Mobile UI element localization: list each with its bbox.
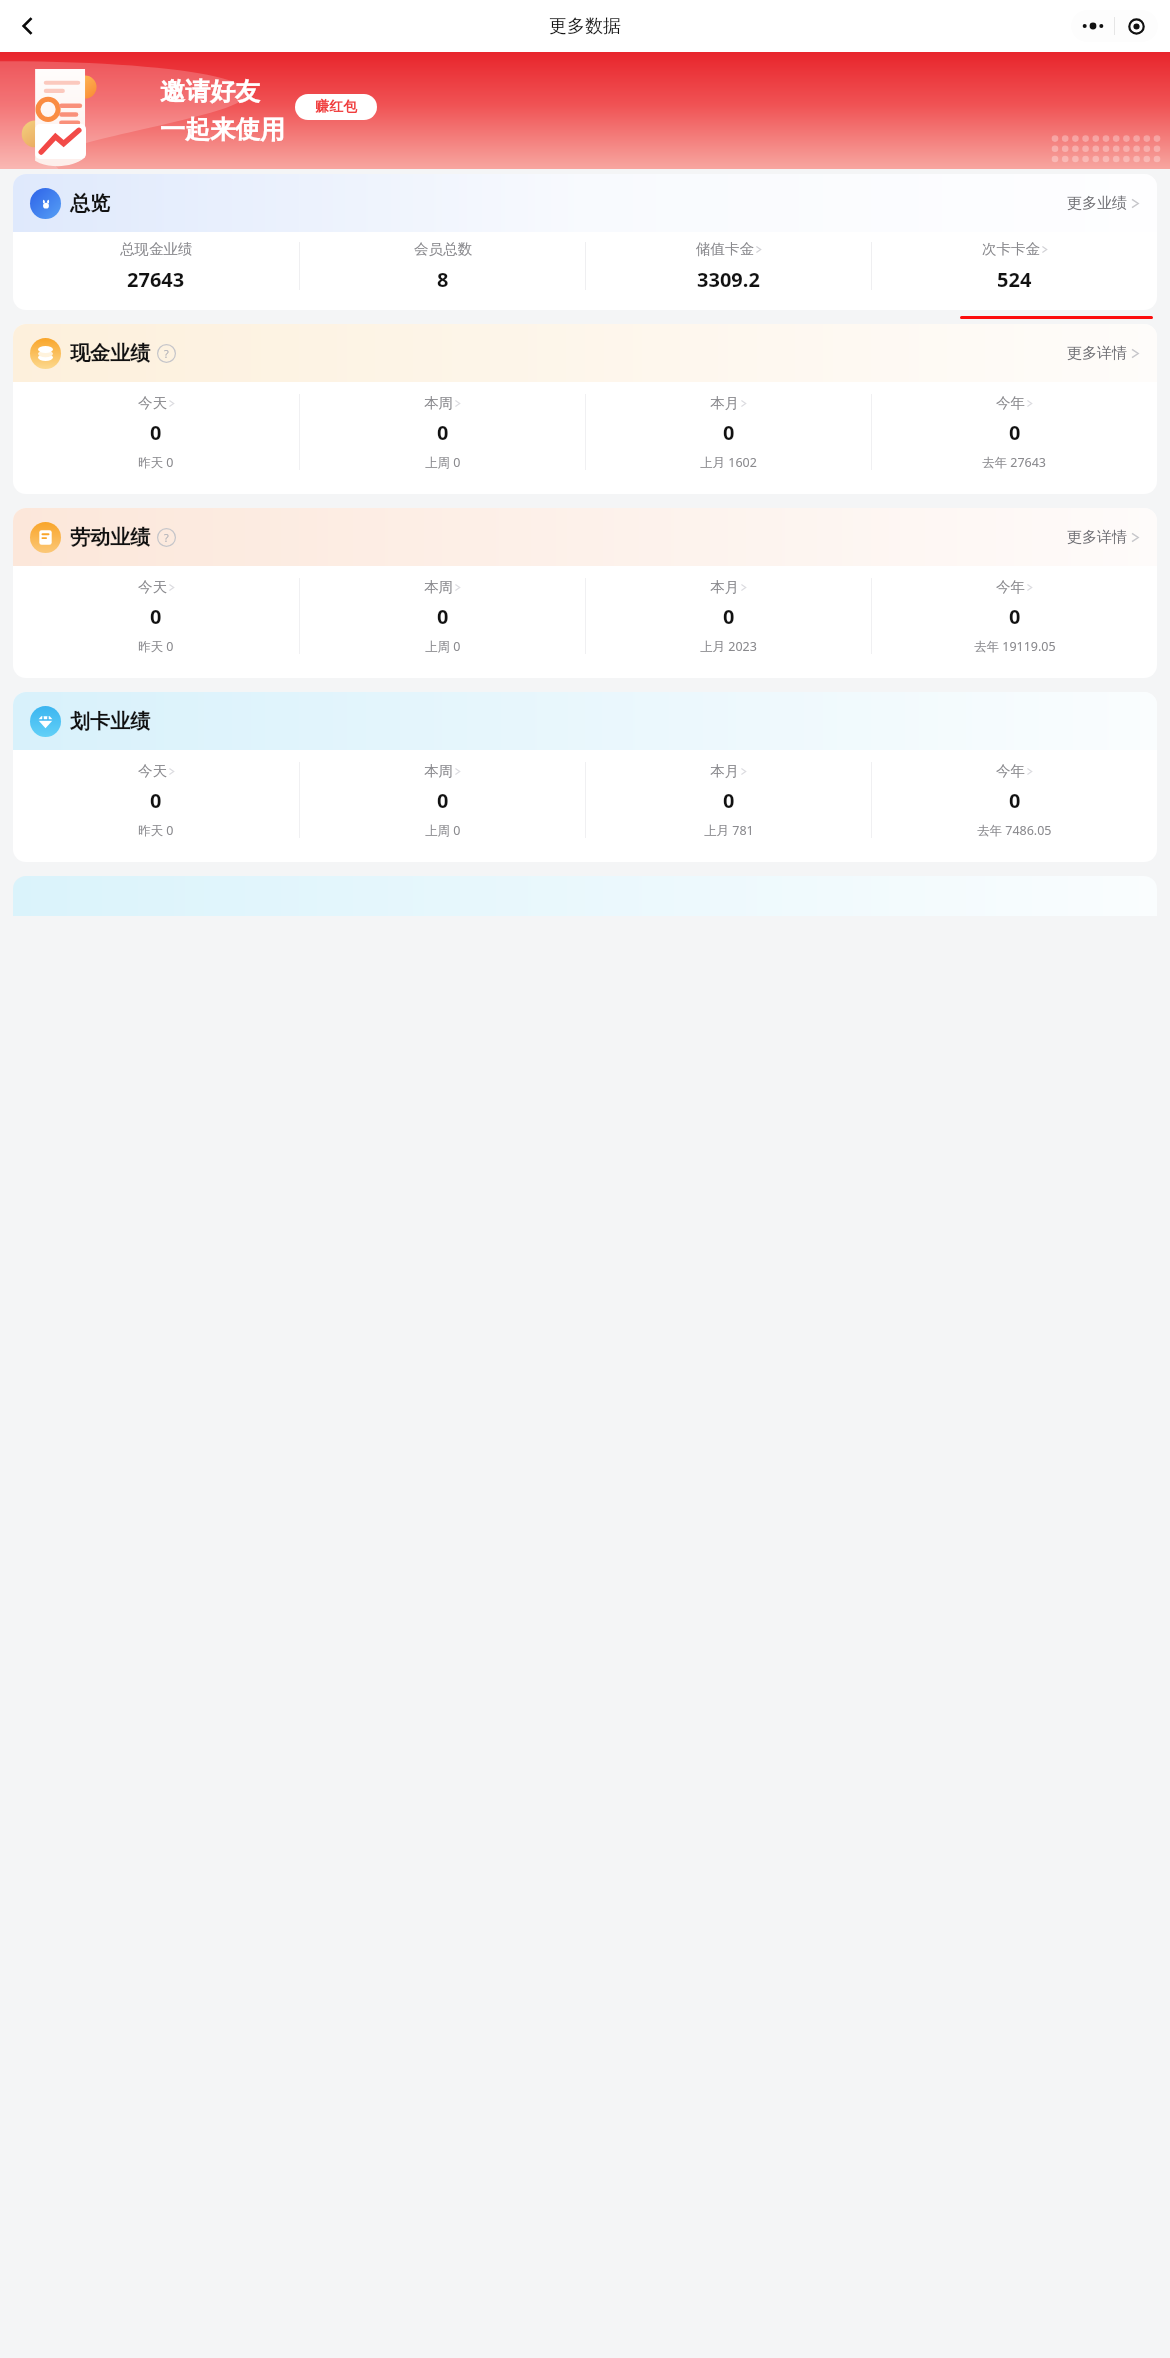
- staticText: 0: [437, 419, 449, 446]
- staticText: 今天: [138, 578, 167, 596]
- button[interactable]: 今年: [872, 750, 1157, 850]
- staticText: 去年 7486.05: [977, 822, 1052, 839]
- staticText: 上周 0: [425, 822, 461, 839]
- staticText: 上周 0: [425, 638, 461, 655]
- staticText: 今天: [138, 394, 167, 412]
- staticText: 0: [437, 787, 449, 814]
- staticText: 一起来使用: [160, 114, 285, 145]
- staticText: 0: [150, 787, 162, 814]
- staticText: 0: [1009, 603, 1021, 630]
- staticText: 524: [997, 266, 1032, 293]
- staticText: 更多数据: [549, 15, 621, 38]
- button[interactable]: 今天: [13, 566, 299, 666]
- button[interactable]: 本月: [586, 750, 871, 850]
- button[interactable]: 邀请好友: [0, 52, 1170, 169]
- staticText: 上月 781: [704, 822, 754, 839]
- button[interactable]: 现金业绩: [13, 324, 1157, 382]
- staticText: 0: [150, 419, 162, 446]
- staticText: 会员总数: [414, 240, 472, 258]
- staticText: 27643: [127, 266, 185, 293]
- staticText: 划卡业绩: [70, 709, 150, 734]
- button[interactable]: 会员总数: [300, 232, 585, 300]
- button[interactable]: 储值卡金: [586, 232, 871, 300]
- button[interactable]: 赚红包: [295, 94, 377, 120]
- staticText: 0: [150, 603, 162, 630]
- staticText: 赚红包: [315, 98, 357, 116]
- other: Mini program menu: [1071, 10, 1158, 42]
- button[interactable]: Help: [157, 344, 176, 363]
- button[interactable]: 划卡业绩: [13, 692, 1157, 750]
- button[interactable]: 本月: [586, 566, 871, 666]
- staticText: 昨天 0: [138, 454, 174, 471]
- button[interactable]: 次卡卡金: [872, 232, 1157, 300]
- staticText: 0: [437, 603, 449, 630]
- button[interactable]: 总览: [13, 174, 1157, 232]
- staticText: 0: [1009, 787, 1021, 814]
- staticText: 本月: [710, 578, 739, 596]
- staticText: 总现金业绩: [120, 240, 193, 258]
- staticText: 上周 0: [425, 454, 461, 471]
- button[interactable]: 本周: [300, 750, 585, 850]
- staticText: 今天: [138, 762, 167, 780]
- button[interactable]: Help: [157, 528, 176, 547]
- button[interactable]: 劳动业绩: [13, 508, 1157, 566]
- staticText: 上月 1602: [700, 454, 757, 471]
- staticText: ?: [164, 530, 169, 545]
- button[interactable]: 本月: [586, 382, 871, 482]
- staticText: 8: [437, 266, 449, 293]
- staticText: 0: [723, 603, 735, 630]
- staticText: 储值卡金: [696, 240, 754, 258]
- button[interactable]: [13, 876, 1157, 916]
- staticText: 更多详情: [1067, 528, 1127, 547]
- staticText: 去年 27643: [982, 454, 1047, 471]
- button[interactable]: 今年: [872, 382, 1157, 482]
- button[interactable]: 本周: [300, 566, 585, 666]
- staticText: 本周: [424, 394, 453, 412]
- staticText: 昨天 0: [138, 638, 174, 655]
- staticText: ?: [164, 346, 169, 361]
- staticText: 0: [723, 787, 735, 814]
- staticText: 邀请好友: [160, 76, 260, 107]
- button[interactable]: 今天: [13, 750, 299, 850]
- staticText: 昨天 0: [138, 822, 174, 839]
- staticText: 0: [1009, 419, 1021, 446]
- button[interactable]: More: [1071, 10, 1114, 42]
- staticText: 劳动业绩: [70, 525, 150, 550]
- staticText: 本月: [710, 762, 739, 780]
- staticText: 今年: [996, 394, 1025, 412]
- button[interactable]: 今天: [13, 382, 299, 482]
- staticText: 0: [723, 419, 735, 446]
- button[interactable]: Back: [6, 4, 50, 48]
- staticText: 本周: [424, 578, 453, 596]
- staticText: 总览: [70, 191, 110, 216]
- staticText: 更多业绩: [1067, 194, 1127, 213]
- staticText: 本周: [424, 762, 453, 780]
- staticText: 次卡卡金: [982, 240, 1040, 258]
- button[interactable]: Close: [1115, 10, 1158, 42]
- staticText: 上月 2023: [700, 638, 757, 655]
- staticText: 今年: [996, 762, 1025, 780]
- staticText: 3309.2: [697, 266, 760, 293]
- staticText: 今年: [996, 578, 1025, 596]
- staticText: 去年 19119.05: [974, 638, 1056, 655]
- button[interactable]: 本周: [300, 382, 585, 482]
- staticText: 本月: [710, 394, 739, 412]
- button[interactable]: 今年: [872, 566, 1157, 666]
- staticText: 现金业绩: [70, 341, 150, 366]
- button[interactable]: 总现金业绩: [13, 232, 299, 300]
- staticText: 更多详情: [1067, 344, 1127, 363]
